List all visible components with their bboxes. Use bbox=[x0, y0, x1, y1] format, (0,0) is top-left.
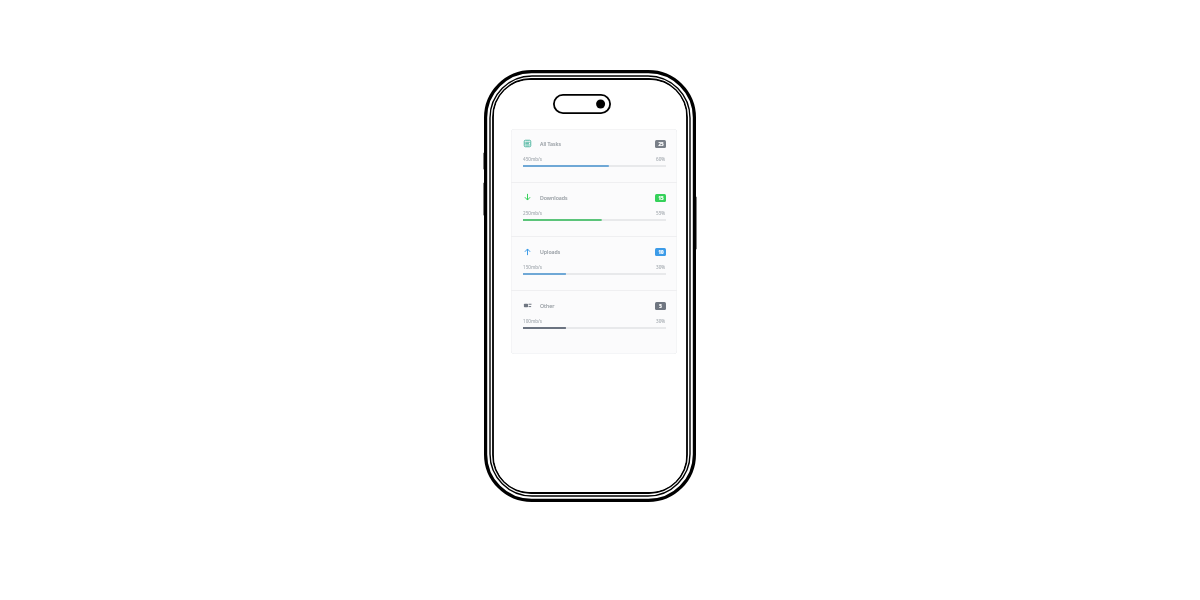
staticText: 60% bbox=[656, 156, 666, 162]
staticText: 30% bbox=[656, 318, 666, 324]
button[interactable]: 10 bbox=[655, 248, 666, 256]
button[interactable]: 5 bbox=[655, 302, 666, 310]
staticText: 30% bbox=[656, 264, 666, 270]
staticText: 250mb/s bbox=[523, 210, 542, 216]
staticText: 5 bbox=[659, 303, 662, 309]
staticText: 15 bbox=[658, 195, 664, 201]
staticText: Other bbox=[540, 302, 555, 309]
staticText: 150mb/s bbox=[523, 264, 542, 270]
staticText: All Tasks bbox=[540, 140, 561, 147]
staticText: Downloads bbox=[540, 194, 568, 201]
staticText: 55% bbox=[656, 210, 666, 216]
other: All Tasks bbox=[523, 139, 532, 148]
button[interactable]: All Tasks bbox=[511, 129, 677, 182]
button[interactable]: Downloads bbox=[511, 183, 677, 236]
staticText: 25 bbox=[658, 141, 664, 147]
button[interactable]: Uploads bbox=[511, 237, 677, 290]
button[interactable]: Other bbox=[511, 291, 677, 344]
button[interactable]: 25 bbox=[655, 140, 666, 148]
staticText: 100mb/s bbox=[523, 318, 542, 324]
button[interactable]: 15 bbox=[655, 194, 666, 202]
other: Uploads bbox=[523, 247, 532, 256]
staticText: 10 bbox=[658, 249, 664, 255]
staticText: Uploads bbox=[540, 248, 561, 255]
staticText: 450mb/s bbox=[523, 156, 542, 162]
other: Other bbox=[523, 301, 532, 310]
other: Downloads bbox=[523, 193, 532, 202]
